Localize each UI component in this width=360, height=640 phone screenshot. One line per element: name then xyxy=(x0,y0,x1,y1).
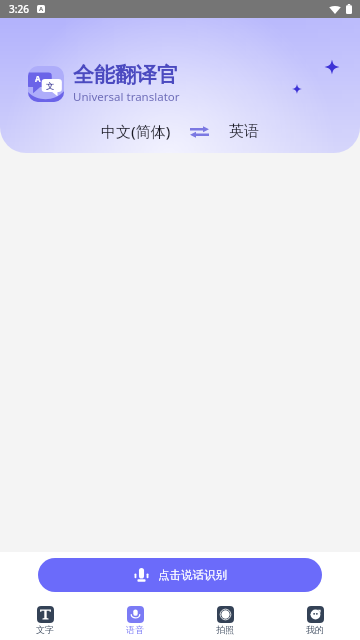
staticText: 全能翻译官 xyxy=(73,62,178,88)
staticText: 3:26 xyxy=(9,2,29,16)
staticText: 英语 xyxy=(229,122,259,141)
staticText: 文字 xyxy=(36,624,54,635)
staticText: 点击说话识别 xyxy=(158,568,227,582)
button[interactable]: 语音 xyxy=(90,592,180,640)
button[interactable]: Swap languages xyxy=(188,120,211,143)
button[interactable]: 点击说话识别 xyxy=(38,558,322,592)
staticText: 语音 xyxy=(126,624,144,635)
button[interactable]: 文字 xyxy=(0,592,90,640)
button[interactable]: 英语 xyxy=(227,119,261,144)
staticText: A xyxy=(35,73,41,84)
staticText: 我的 xyxy=(306,624,324,635)
button[interactable]: 拍照 xyxy=(180,592,270,640)
staticText: Universal translator xyxy=(73,89,180,105)
staticText: 拍照 xyxy=(216,624,234,635)
staticText: A xyxy=(39,5,44,13)
staticText: 中文(简体) xyxy=(101,121,171,141)
staticText: 文 xyxy=(46,81,54,91)
button[interactable]: 中文(简体) xyxy=(99,118,173,144)
button[interactable]: 我的 xyxy=(270,592,360,640)
